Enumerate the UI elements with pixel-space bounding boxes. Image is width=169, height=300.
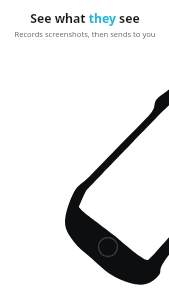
staticText: See what they see [30,10,140,27]
staticText: Records screenshots, then sends to you [14,29,156,39]
